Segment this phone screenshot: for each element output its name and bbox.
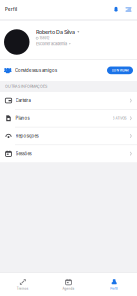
staticText: 158912 [40, 36, 50, 40]
button[interactable]: Perfil [91, 273, 137, 296]
staticText: Sessões [15, 151, 31, 156]
staticText: OUTRAS INFORMAÇÕES [5, 84, 47, 89]
staticText: Treinos [17, 287, 29, 290]
button[interactable]: Notifications [110, 3, 122, 16]
staticText: CONVIDAR [111, 68, 128, 72]
staticText: Roberto Da Silva [36, 29, 75, 35]
button[interactable]: Carteira [0, 92, 137, 109]
staticText: Perfil [110, 287, 118, 290]
staticText: Planos [15, 116, 29, 121]
staticText: Agenda [62, 287, 74, 290]
staticText: Carteira [15, 98, 30, 103]
staticText: 3 ATIVOS [113, 116, 127, 120]
staticText: Convide seus amigos [15, 68, 57, 73]
button[interactable]: Reposições [0, 127, 137, 144]
button[interactable]: Agenda [46, 273, 91, 296]
button[interactable]: Planos [0, 110, 137, 127]
staticText: Escolher academia [36, 42, 67, 46]
button[interactable]: Menu [122, 3, 135, 16]
staticText: Perfil [5, 7, 17, 12]
staticText: Reposições [15, 133, 38, 139]
button[interactable]: Treinos [0, 273, 46, 296]
button[interactable]: Sessões [0, 145, 137, 162]
button[interactable]: Convide seus amigos [0, 60, 137, 81]
